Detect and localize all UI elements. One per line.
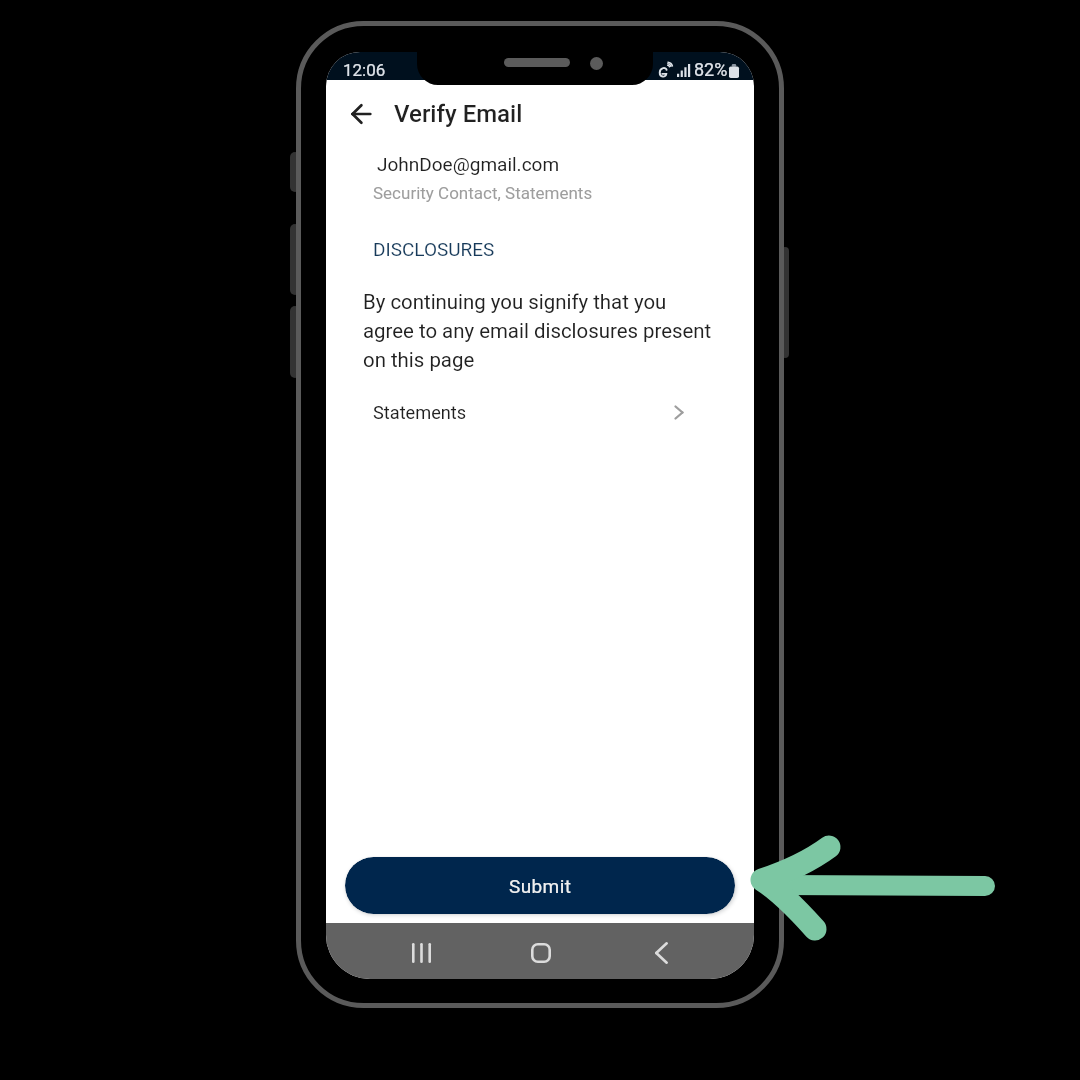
button[interactable]: Back [639, 930, 684, 975]
button[interactable]: Home [518, 930, 563, 975]
staticText: 82% [694, 59, 728, 80]
button[interactable]: Recent apps [399, 930, 444, 975]
button[interactable]: Back [335, 88, 387, 140]
staticText: Verify Email [394, 100, 523, 128]
staticText: Security Contact, Statements [373, 183, 593, 203]
staticText: By continuing you signify that you agree… [363, 290, 719, 372]
button[interactable]: Submit [345, 857, 735, 914]
staticText: JohnDoe@gmail.com [377, 153, 560, 175]
staticText: Submit [509, 875, 572, 897]
staticText: Statements [373, 402, 467, 423]
staticText: DISCLOSURES [373, 238, 495, 260]
button[interactable]: Statements [326, 390, 754, 434]
staticText: 12:06 [343, 60, 386, 80]
